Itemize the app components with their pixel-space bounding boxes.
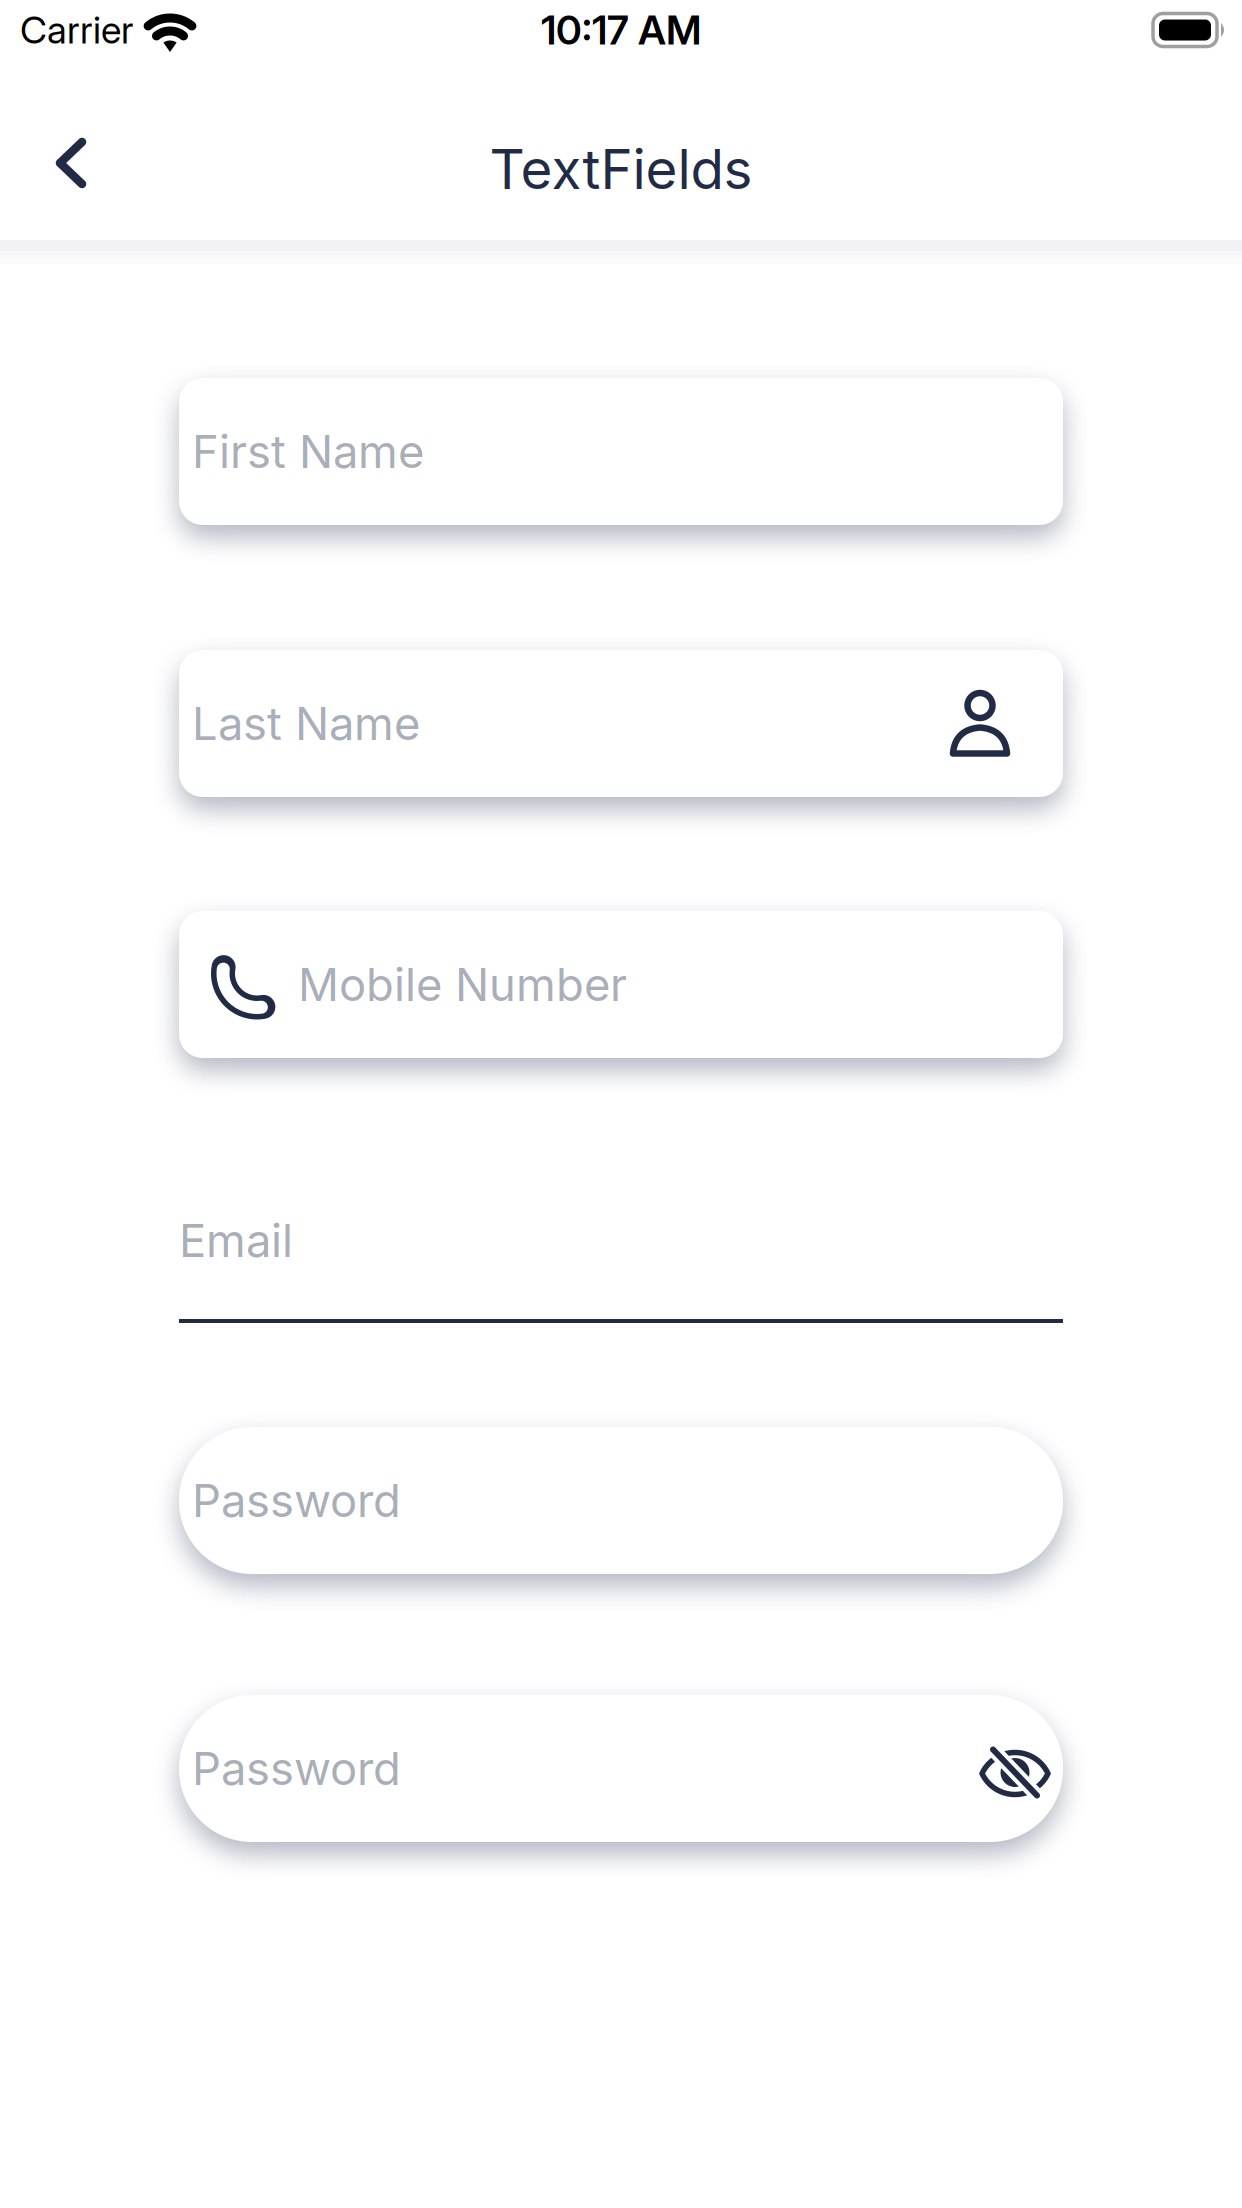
button[interactable]: Password [179,1427,1063,1574]
button[interactable]: Email [179,1176,1063,1323]
button[interactable]: Back [0,118,116,208]
staticText: Password [192,1742,401,1795]
staticText: TextFields [489,137,752,201]
button[interactable]: First Name [179,378,1063,525]
staticText: Last Name [192,697,420,750]
staticText: Password [192,1474,401,1527]
button[interactable]: Toggle password visibility [971,1735,1059,1801]
button[interactable]: Mobile Number [179,911,1063,1058]
staticText: 10:17 AM [541,6,701,54]
staticText: Email [179,1214,293,1267]
staticText: Carrier [20,8,133,52]
staticText: Mobile Number [298,958,627,1011]
button[interactable]: Password [179,1695,1063,1842]
staticText: First Name [192,425,424,478]
button[interactable]: Last Name [179,650,1063,797]
